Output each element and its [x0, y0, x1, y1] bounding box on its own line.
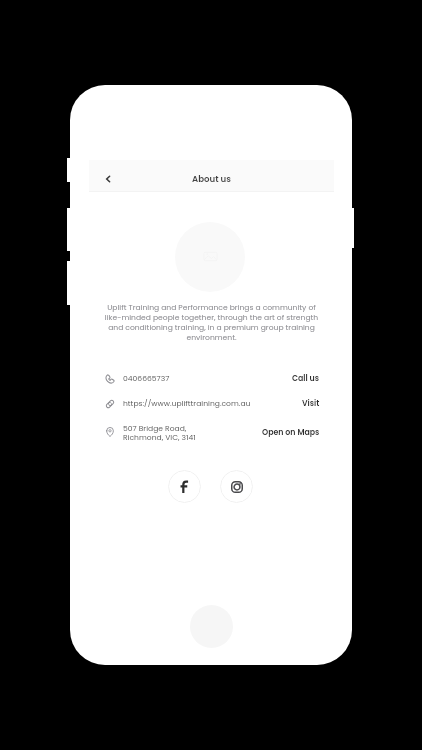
staticText: Open on Maps — [262, 427, 320, 438]
staticText: 507 Bridge Road, Richmond, VIC, 3141 — [123, 423, 196, 442]
staticText: https://www.uplifttraining.com.au — [123, 398, 251, 409]
staticText: Uplift Training and Performance brings a… — [100, 302, 323, 343]
button[interactable]: Facebook — [168, 470, 201, 503]
staticText: 0406665737 — [123, 373, 170, 384]
staticText: Call us — [292, 373, 320, 384]
button[interactable]: 507 Bridge Road, Richmond, VIC, 3141 — [105, 417, 320, 447]
button[interactable]: Back — [97, 168, 119, 190]
staticText: Visit — [302, 398, 320, 409]
button[interactable]: Instagram — [220, 470, 253, 503]
button[interactable]: 0406665737 — [105, 366, 320, 391]
button[interactable]: https://www.uplifttraining.com.au — [105, 391, 320, 416]
staticText: About us — [192, 173, 231, 185]
